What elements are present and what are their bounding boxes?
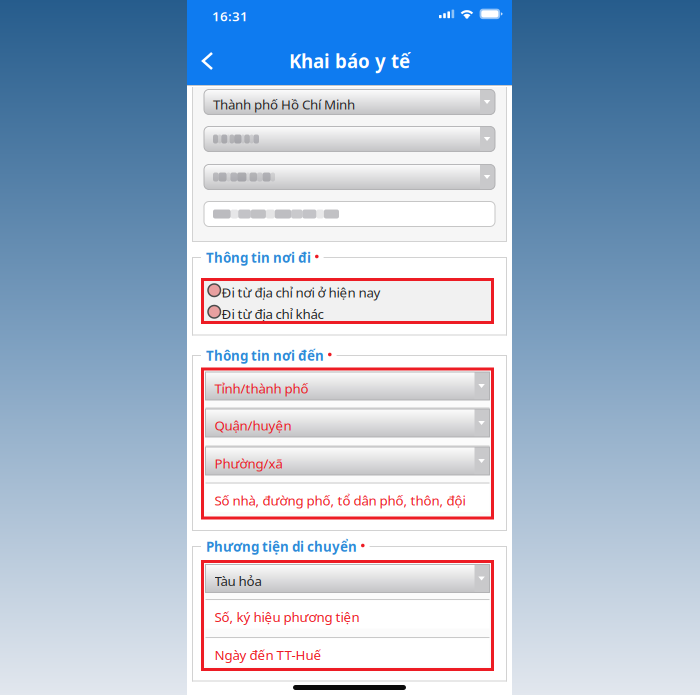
staticText: Tàu hỏa [214,572,261,590]
staticText: Khai báo y tế [289,49,410,73]
button[interactable] [204,201,495,226]
button[interactable] [204,126,495,151]
button[interactable]: Tàu hỏa [205,564,489,592]
button[interactable]: Thành phố Hồ Chí Minh [204,89,495,114]
staticText: Số nhà, đường phố, tổ dân phố, thôn, đội [214,491,465,509]
staticText: Phương tiện di chuyển [206,538,357,555]
staticText: Đi từ địa chỉ khác [221,305,323,323]
button[interactable]: Ngày đến TT-Huế [205,638,489,666]
staticText: Số, ký hiệu phương tiện [214,608,359,626]
button[interactable]: Quận/huyện [205,409,489,437]
button[interactable]: Đi từ địa chỉ nơi ở hiện nay [208,280,488,301]
staticText: 16:31 [212,7,248,25]
staticText: Thông tin nơi đến [206,347,324,364]
button[interactable]: Back [187,44,227,78]
staticText: Đi từ địa chỉ nơi ở hiện nay [221,283,380,301]
button[interactable]: Số nhà, đường phố, tổ dân phố, thôn, đội [205,484,489,512]
button[interactable]: Đi từ địa chỉ khác [208,301,488,323]
button[interactable]: Tỉnh/thành phố [205,372,489,400]
staticText: Thông tin nơi đi [206,249,311,266]
button[interactable]: Số, ký hiệu phương tiện [205,600,489,628]
staticText: Phường/xã [214,454,282,472]
staticText: Tỉnh/thành phố [214,379,308,397]
staticText: Quận/huyện [214,416,291,434]
button[interactable] [204,164,495,189]
staticText: Thành phố Hồ Chí Minh [213,95,355,113]
button[interactable]: Phường/xã [205,447,489,475]
staticText: Ngày đến TT-Huế [214,646,321,664]
